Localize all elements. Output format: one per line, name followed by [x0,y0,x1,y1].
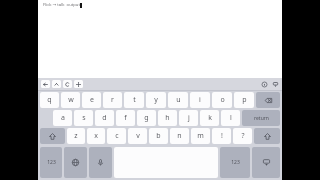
staticText: Flick → talk output [43,2,80,8]
button[interactable]: Hide keyboard [271,80,279,88]
staticText: h [165,113,170,123]
staticText: t [133,95,136,105]
staticText: w [68,95,74,105]
staticText: o [220,95,225,105]
staticText: j [188,113,190,123]
staticText: k [208,113,212,123]
staticText: return [254,115,269,122]
staticText: ! [221,131,223,141]
staticText: 123 [231,159,240,166]
button[interactable]: Backspace [256,92,280,108]
staticText: d [102,113,107,123]
button[interactable]: q [40,92,59,108]
staticText: m [197,131,204,141]
staticText: b [156,131,161,141]
button[interactable]: ? [233,128,252,144]
button[interactable]: b [149,128,168,144]
button[interactable]: return [242,110,280,126]
button[interactable]: Insert above [52,80,61,88]
staticText: ? [241,131,245,141]
button[interactable]: v [128,128,147,144]
staticText: x [94,131,98,141]
button[interactable]: w [61,92,80,108]
staticText: f [124,113,127,123]
button[interactable]: 123 [40,147,62,178]
button[interactable]: z [67,128,85,144]
button[interactable]: Switch keyboard [64,147,87,178]
button[interactable]: c [107,128,126,144]
staticText: u [176,95,181,105]
button[interactable]: e [82,92,101,108]
button[interactable]: h [158,110,177,126]
staticText: g [144,113,149,123]
button[interactable]: ! [212,128,231,144]
button[interactable]: Undo [41,80,50,88]
staticText: z [74,131,78,141]
button[interactable]: Flick → talk output [43,2,82,8]
button[interactable]: s [74,110,93,126]
staticText: a [61,113,65,123]
button[interactable]: Redo [63,80,72,88]
button[interactable]: y [146,92,166,108]
staticText: e [90,95,94,105]
staticText: s [82,113,86,123]
staticText: v [136,131,140,141]
button[interactable]: Move [74,80,83,88]
button[interactable]: Hide keyboard [252,147,280,178]
button[interactable]: Info [260,80,268,88]
button[interactable]: n [170,128,189,144]
staticText: y [154,95,158,105]
button[interactable]: i [190,92,210,108]
button[interactable]: Dictate [89,147,112,178]
button[interactable]: r [103,92,122,108]
staticText: p [242,95,247,105]
button[interactable]: a [53,110,72,126]
button[interactable]: j [179,110,198,126]
staticText: q [47,95,52,105]
button[interactable]: f [116,110,135,126]
button[interactable]: Shift [40,128,65,144]
button[interactable]: l [221,110,240,126]
staticText: c [115,131,119,141]
button[interactable]: t [124,92,144,108]
button[interactable]: g [137,110,156,126]
button[interactable]: m [191,128,210,144]
staticText: 123 [47,159,56,166]
staticText: i [199,95,201,105]
button[interactable]: x [87,128,105,144]
staticText: r [111,95,114,105]
button[interactable]: o [212,92,232,108]
staticText: n [177,131,182,141]
button[interactable]: u [168,92,188,108]
staticText: l [230,113,232,123]
button[interactable]: 123 [220,147,250,178]
button[interactable]: d [95,110,114,126]
button[interactable]: Shift [254,128,280,144]
button[interactable]: k [200,110,219,126]
button[interactable]: p [234,92,254,108]
